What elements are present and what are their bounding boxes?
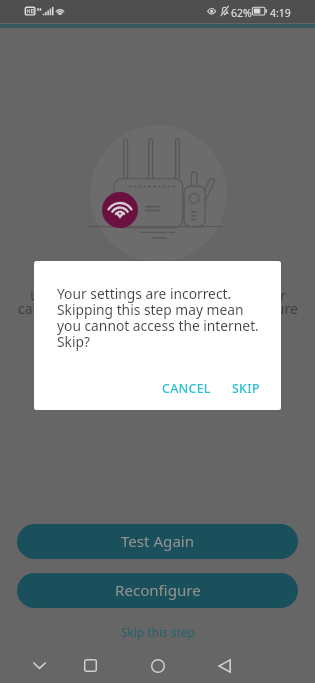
button[interactable]: Test Again: [17, 524, 298, 559]
staticText: Your settings are incorrect. Skipping th…: [57, 284, 261, 351]
button[interactable]: Skip this step: [111, 621, 205, 643]
button[interactable]: Back: [200, 648, 248, 683]
button[interactable]: Home: [133, 648, 182, 683]
button[interactable]: SKIP: [224, 374, 268, 403]
button[interactable]: Hide keyboard: [14, 648, 64, 683]
staticText: cable is securely connected and make sur…: [18, 299, 298, 318]
staticText: 62%: [231, 6, 252, 20]
staticText: 4:19: [270, 6, 291, 20]
staticText: Unable to connect to the internet. Your: [30, 286, 286, 305]
button[interactable]: Recent apps: [66, 648, 114, 683]
staticText: CANCEL: [162, 380, 211, 397]
button[interactable]: Reconfigure: [17, 573, 298, 608]
staticText: Skip this step: [121, 624, 195, 640]
staticText: Reconfigure: [115, 580, 201, 601]
staticText: SKIP: [232, 380, 260, 397]
staticText: Test Again: [121, 531, 195, 552]
button[interactable]: CANCEL: [154, 374, 219, 403]
